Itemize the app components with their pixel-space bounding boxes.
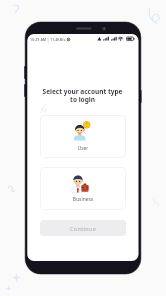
staticText: User — [40, 145, 126, 152]
button[interactable]: Continue — [40, 220, 126, 236]
staticText: Continue — [70, 225, 97, 232]
staticText: Business — [40, 196, 126, 203]
button[interactable]: User — [40, 115, 126, 158]
staticText: Select your account type to login — [27, 87, 138, 104]
staticText: 10:29 AM | 11.4KB/s — [30, 37, 66, 42]
button[interactable]: Business — [40, 167, 126, 210]
